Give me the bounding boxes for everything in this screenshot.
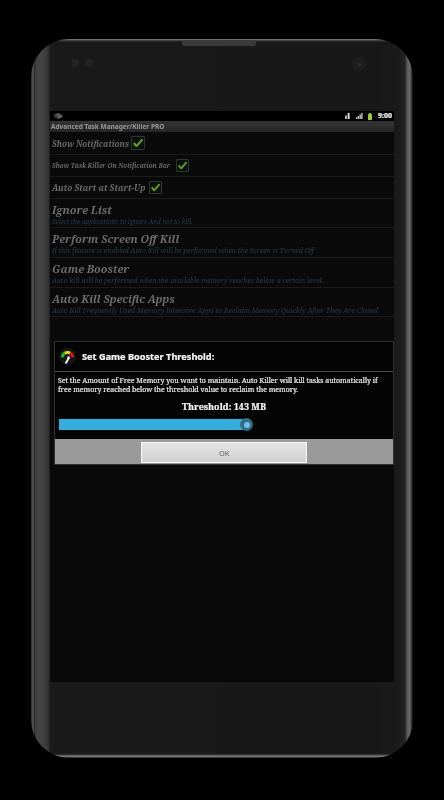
staticText: If this feature is enabled Auto Kill wil… — [52, 246, 314, 255]
staticText: Set Game Booster Threshold: — [82, 350, 215, 363]
staticText: Auto kill will be performed when the ava… — [52, 276, 324, 285]
button[interactable]: Auto Start at Start-Up — [50, 177, 394, 198]
button[interactable]: Show Task Killer On Notification Bar — [50, 155, 394, 176]
button[interactable]: Ignore List — [50, 199, 394, 227]
button[interactable]: OK — [141, 442, 307, 463]
button[interactable]: Game Booster — [50, 258, 394, 287]
button[interactable]: Perform Screen Off Kill — [50, 228, 394, 257]
staticText: Auto Start at Start-Up — [52, 182, 146, 193]
staticText: Perform Screen Off Kill — [52, 231, 180, 246]
staticText: Advanced Task Manager/Killer PRO — [51, 122, 165, 131]
staticText: Show Task Killer On Notification Bar — [52, 161, 171, 170]
staticText: Auto Kill Frequently Used Memory Intensi… — [52, 306, 380, 316]
staticText: Select the applications to Ignore And no… — [52, 217, 193, 226]
staticText: Game Booster — [52, 261, 130, 276]
staticText: OK — [219, 448, 230, 458]
staticText: 9:00 — [378, 111, 392, 121]
button[interactable]: Auto Kill Specific Apps — [50, 288, 394, 316]
staticText: Ignore List — [52, 202, 112, 217]
staticText: Threshold: 143 MB — [54, 400, 394, 412]
staticText: Show Notifications — [52, 138, 130, 149]
other: Game booster gauge — [59, 348, 76, 365]
staticText: Set the Amount of Free Memory you want t… — [58, 376, 391, 394]
button[interactable]: Show Notifications — [50, 132, 394, 154]
staticText: Auto Kill Specific Apps — [52, 291, 175, 306]
